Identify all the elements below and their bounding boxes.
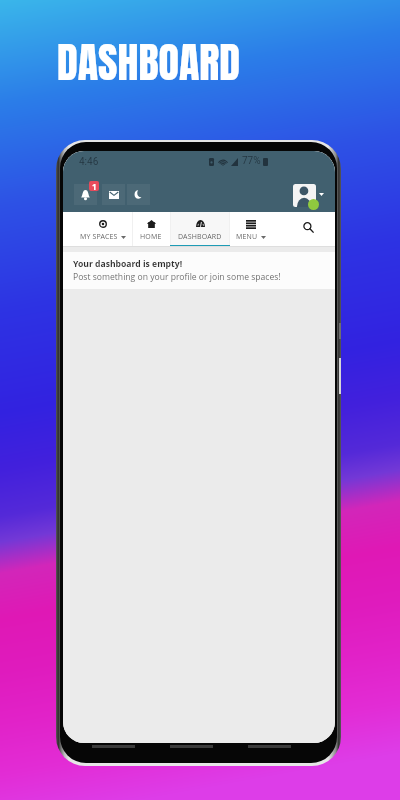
button[interactable]: HOME (132, 212, 170, 247)
button[interactable]: Notifications (74, 184, 97, 205)
button[interactable]: Messages (102, 184, 125, 205)
staticText: HOME (140, 232, 162, 242)
button[interactable]: Search (273, 212, 335, 247)
staticText: Your dashboard is empty! (73, 258, 183, 270)
staticText: 1 (92, 181, 97, 191)
staticText: MENU (236, 232, 258, 242)
staticText: Post something on your profile or join s… (73, 271, 281, 283)
button[interactable]: MENU (229, 212, 273, 247)
staticText: 4:46 (79, 156, 99, 168)
staticText: DASHBOARD (178, 232, 222, 242)
staticText: DASHBOARD (57, 31, 241, 94)
staticText: MY SPACES (80, 232, 118, 242)
button[interactable]: DASHBOARD (170, 212, 230, 247)
button[interactable]: MY SPACES (73, 212, 132, 247)
button[interactable]: Account menu (293, 184, 323, 208)
button[interactable]: Night mode (127, 184, 150, 205)
staticText: 77% (242, 155, 261, 167)
